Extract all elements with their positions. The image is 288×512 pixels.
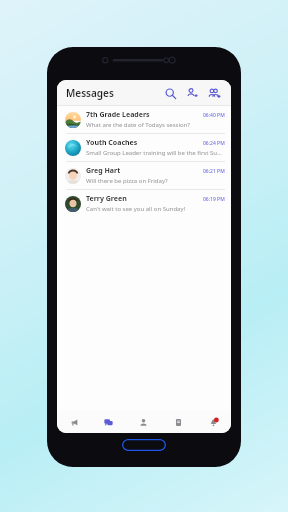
button[interactable]: Search [161, 84, 179, 102]
button[interactable]: Terry Green [57, 190, 231, 217]
staticText: Messages [66, 86, 114, 100]
staticText: Can't wait to see you all on Sunday! [86, 205, 186, 213]
staticText: 06:19 PM [203, 196, 225, 203]
staticText: 06:24 PM [203, 140, 225, 147]
button[interactable]: Youth Coaches [57, 134, 231, 161]
staticText: 06:21 PM [203, 168, 225, 175]
button[interactable]: Add group [205, 84, 223, 102]
staticText: Will there be pizza on Friday? [86, 177, 168, 185]
button[interactable]: Greg Hart [57, 162, 231, 189]
button[interactable]: Notifications [196, 411, 231, 433]
button[interactable]: Profile [126, 411, 161, 433]
button[interactable]: Add person [183, 84, 201, 102]
button[interactable]: Announcements [57, 411, 91, 433]
staticText: 7th Grade Leaders [86, 110, 150, 120]
staticText: What are the date of Todays session? [86, 121, 190, 129]
button[interactable]: Messages [91, 411, 126, 433]
button[interactable]: 7th Grade Leaders [57, 106, 231, 133]
staticText: 06:40 PM [203, 112, 225, 119]
button[interactable]: Files [161, 411, 196, 433]
staticText: Small Group Leader training will be the … [86, 149, 225, 157]
staticText: Greg Hart [86, 166, 121, 176]
staticText: Terry Green [86, 194, 127, 204]
staticText: Youth Coaches [86, 138, 138, 148]
